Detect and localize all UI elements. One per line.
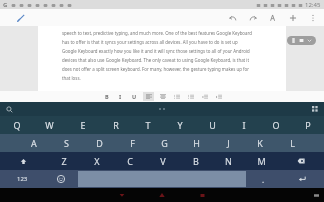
button[interactable]: W — [33, 116, 66, 134]
staticText: Google Keyboard exactly how you like it … — [62, 48, 250, 54]
button[interactable]: M — [245, 152, 278, 170]
staticText: O — [272, 119, 280, 131]
staticText: H — [193, 137, 200, 149]
staticText: M — [257, 155, 266, 167]
staticText: has to offer is that it syncs your setti… — [62, 39, 238, 45]
staticText: B — [193, 155, 199, 167]
button[interactable]: Underline — [129, 92, 140, 101]
button[interactable]: B — [179, 152, 212, 170]
button[interactable]: Bulleted list — [171, 92, 182, 101]
button[interactable]: R — [99, 116, 132, 134]
staticText: 12:45 — [305, 1, 321, 9]
button[interactable]: Enter — [280, 170, 324, 188]
button[interactable]: Undo — [226, 11, 240, 25]
staticText: U — [209, 119, 216, 131]
button[interactable]: Recent apps — [196, 189, 208, 201]
button[interactable]: View options — [287, 36, 316, 45]
staticText: N — [225, 155, 232, 167]
button[interactable]: P — [292, 116, 324, 134]
button[interactable]: Search — [3, 103, 15, 115]
button[interactable]: F — [116, 134, 148, 152]
button[interactable]: X — [80, 152, 113, 170]
button[interactable]: Y — [164, 116, 196, 134]
staticText: does not offer a split screen keyboard. … — [62, 66, 249, 72]
button[interactable]: D — [83, 134, 116, 152]
button[interactable]: U — [196, 116, 228, 134]
button[interactable]: Back — [14, 11, 28, 25]
button[interactable]: E — [66, 116, 99, 134]
button[interactable]: Increase indent — [213, 92, 224, 101]
staticText: G — [3, 1, 8, 9]
staticText: U — [132, 93, 137, 100]
staticText: . — [262, 174, 265, 185]
button[interactable]: J — [212, 134, 244, 152]
button[interactable]: Numbered list — [185, 92, 196, 101]
button[interactable]: Emoji — [44, 170, 78, 188]
staticText: D — [96, 137, 103, 149]
staticText: V — [160, 155, 166, 167]
button[interactable]: I — [228, 116, 260, 134]
button[interactable]: Decrease indent — [199, 92, 210, 101]
button[interactable]: Align left — [143, 92, 154, 101]
button[interactable]: Format — [266, 11, 280, 25]
button[interactable]: Shift — [0, 152, 47, 170]
staticText: W — [45, 119, 54, 131]
button[interactable]: V — [146, 152, 179, 170]
button[interactable]: Q — [0, 116, 33, 134]
staticText: Q — [13, 119, 21, 131]
staticText: speech to text, predictive typing, and m… — [62, 30, 252, 36]
button[interactable]: Home — [156, 189, 168, 201]
button[interactable]: S — [50, 134, 83, 152]
staticText: F — [130, 137, 135, 149]
button[interactable]: O — [260, 116, 292, 134]
staticText: I — [119, 93, 122, 100]
button[interactable]: More options — [306, 11, 320, 25]
staticText: 123 — [17, 175, 28, 183]
staticText: R — [113, 119, 119, 131]
button[interactable]: Z — [47, 152, 80, 170]
staticText: G — [161, 137, 168, 149]
staticText: J — [227, 137, 230, 149]
staticText: Y — [177, 119, 183, 131]
staticText: I — [242, 119, 246, 131]
button[interactable]: T — [132, 116, 164, 134]
button[interactable]: Italic — [115, 92, 126, 101]
button[interactable]: Bold — [101, 92, 112, 101]
staticText: P — [305, 119, 311, 131]
staticText: B — [105, 93, 109, 100]
staticText: Z — [61, 155, 67, 167]
button[interactable]: K — [244, 134, 276, 152]
staticText: K — [257, 137, 263, 149]
button[interactable]: N — [212, 152, 245, 170]
staticText: devices that also use Google Keyboard. T… — [62, 57, 250, 63]
staticText: C — [127, 155, 133, 167]
button[interactable]: G — [148, 134, 180, 152]
button[interactable]: C — [113, 152, 146, 170]
button[interactable]: Back — [116, 189, 128, 201]
button[interactable]: H — [180, 134, 212, 152]
staticText: E — [80, 119, 86, 131]
button[interactable]: Insert — [286, 11, 300, 25]
staticText: T — [145, 119, 151, 131]
staticText: L — [290, 137, 295, 149]
button[interactable]: L — [276, 134, 308, 152]
button[interactable]: A — [17, 134, 50, 152]
button[interactable]: Backspace — [278, 152, 324, 170]
button[interactable]: Hide keyboard — [311, 190, 321, 200]
staticText: that loss. — [62, 75, 81, 81]
button[interactable]: Keyboard settings — [309, 103, 321, 115]
button[interactable]: Redo — [246, 11, 260, 25]
button[interactable]: Align center — [157, 92, 168, 101]
button[interactable]: . — [246, 170, 280, 188]
staticText: S — [64, 137, 69, 149]
button[interactable]: 123 — [0, 170, 44, 188]
staticText: A — [31, 137, 37, 149]
staticText: X — [94, 155, 100, 167]
